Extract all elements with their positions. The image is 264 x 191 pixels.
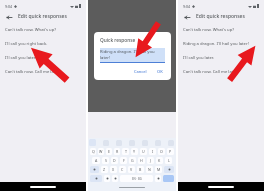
staticText: M [157, 167, 161, 172]
staticText: I'll call you right back. [93, 41, 136, 47]
button[interactable]: N [146, 166, 153, 173]
button[interactable]: Can't talk now. Call me later? [88, 65, 176, 79]
button[interactable]: Can't talk now. What's up? [178, 23, 264, 37]
staticText: OK [157, 69, 163, 74]
staticText: I [152, 149, 154, 154]
staticText: B [139, 167, 142, 172]
button[interactable]: Can't talk now. What's up? [88, 23, 176, 37]
button[interactable]: K [156, 157, 163, 164]
button[interactable]: I'll call you later. [178, 51, 264, 65]
staticText: Z [103, 167, 106, 172]
button[interactable]: Z [101, 166, 108, 173]
staticText: E [108, 149, 110, 154]
staticText: Can't talk now. Call me later? [5, 69, 62, 75]
staticText: Can't talk now. What's up? [183, 27, 235, 33]
staticText: V [130, 167, 133, 172]
staticText: U [142, 149, 145, 154]
button[interactable]: D [111, 157, 118, 164]
staticText: Riding a dragon. I'll hail you later! [100, 49, 165, 61]
button[interactable]: R [114, 148, 120, 155]
staticText: H [140, 158, 143, 163]
button[interactable]: OK [155, 68, 165, 75]
button[interactable]: Comma [104, 175, 110, 182]
button[interactable]: Can't talk now. What's up? [0, 23, 86, 37]
staticText: P [169, 149, 172, 154]
staticText: Can't talk now. Call me later? [183, 69, 240, 75]
staticText: F [123, 158, 125, 163]
button[interactable]: C [119, 166, 126, 173]
button[interactable]: A [92, 157, 100, 164]
button[interactable]: W [98, 148, 104, 155]
button[interactable]: Shift [90, 166, 99, 173]
button[interactable]: Numbers [90, 175, 102, 182]
staticText: G [131, 158, 134, 163]
button[interactable]: F [120, 157, 127, 164]
button[interactable]: V [128, 166, 135, 173]
staticText: Edit quick responses [18, 13, 67, 20]
staticText: K [158, 158, 161, 163]
button[interactable]: Period [155, 175, 161, 182]
button[interactable]: G [129, 157, 136, 164]
button[interactable]: Q [90, 148, 96, 155]
button[interactable]: Cancel [132, 68, 149, 75]
staticText: Cancel [134, 69, 147, 74]
button[interactable]: Riding a dragon. I'll hail you later! [178, 37, 264, 51]
button[interactable]: Can't talk now. Call me later? [178, 65, 264, 79]
button[interactable]: T [122, 148, 129, 155]
button[interactable]: I'll call you later. [88, 51, 176, 65]
staticText: I'll call you right back. [5, 41, 48, 47]
button[interactable]: Enter [163, 175, 174, 182]
staticText: Can't talk now. Call me later? [93, 69, 150, 75]
staticText: W [99, 149, 103, 154]
button[interactable]: Can't talk now. Call me later? [0, 65, 86, 79]
button[interactable]: I'll call you right back. [0, 37, 86, 51]
staticText: R [116, 149, 119, 154]
button[interactable]: I [149, 148, 156, 155]
staticText: Can't talk now. What's up? [5, 27, 57, 33]
staticText: EN · BG [132, 177, 142, 181]
button[interactable]: B [137, 166, 144, 173]
button[interactable]: L [165, 157, 172, 164]
button[interactable]: Back [4, 12, 14, 22]
staticText: C [121, 167, 124, 172]
staticText: Riding a dragon. I'll hail you later! [183, 41, 249, 47]
button[interactable]: Y [131, 148, 138, 155]
button[interactable]: M [155, 166, 162, 173]
staticText: S [105, 158, 107, 163]
button[interactable]: J [147, 157, 154, 164]
button[interactable]: U [140, 148, 147, 155]
button[interactable]: S [102, 157, 109, 164]
staticText: J [150, 158, 151, 163]
button[interactable]: P [167, 148, 174, 155]
button[interactable]: O [158, 148, 165, 155]
staticText: Quick response [100, 37, 136, 44]
staticText: N [148, 167, 151, 172]
button[interactable]: EN · BG [120, 175, 153, 182]
staticText: L [168, 158, 170, 163]
staticText: I'll call you later. [5, 55, 37, 61]
button[interactable]: H [138, 157, 145, 164]
staticText: Q [92, 149, 95, 154]
staticText: D [113, 158, 116, 163]
button[interactable]: X [110, 166, 117, 173]
button[interactable]: E [106, 148, 112, 155]
staticText: Edit quick responses [196, 13, 245, 20]
staticText: I'll call you later. [183, 55, 215, 61]
button[interactable]: I'll call you later. [0, 51, 86, 65]
button[interactable]: Backspace [164, 166, 174, 173]
button[interactable]: Emoji [112, 175, 118, 182]
staticText: Can't talk now. What's up? [93, 27, 145, 33]
button[interactable]: I'll call you right back. [88, 37, 176, 51]
staticText: I'll call you later. [93, 55, 125, 61]
button[interactable]: Back [182, 12, 192, 22]
